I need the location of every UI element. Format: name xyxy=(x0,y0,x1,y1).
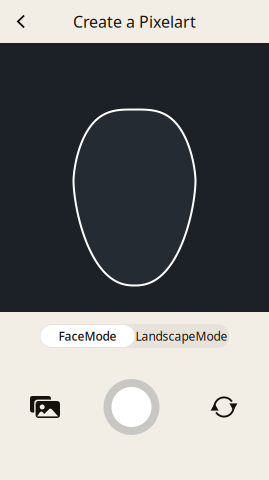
button[interactable]: LandscapeMode xyxy=(134,325,228,347)
button[interactable]: Flip Camera xyxy=(196,379,252,435)
staticText: FaceMode xyxy=(58,328,116,344)
button[interactable]: Photo Library xyxy=(17,379,73,435)
staticText: Create a Pixelart xyxy=(73,11,196,32)
button[interactable]: Capture Photo xyxy=(103,379,159,435)
button[interactable]: Back xyxy=(8,0,34,43)
button[interactable]: FaceMode xyxy=(40,325,134,347)
staticText: LandscapeMode xyxy=(135,328,227,344)
